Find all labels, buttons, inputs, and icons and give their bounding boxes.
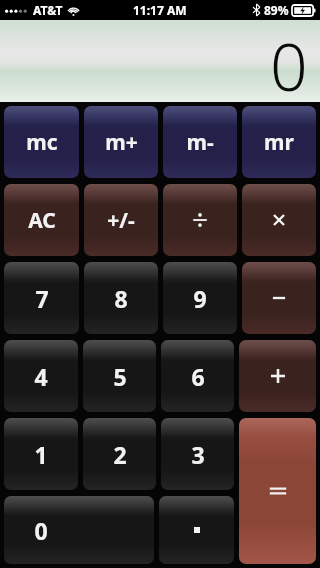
staticText: 0 [270, 20, 308, 100]
button[interactable]: Minus [242, 262, 316, 334]
staticText: 5 [113, 361, 127, 392]
button[interactable]: 6 [161, 340, 234, 412]
button[interactable]: 2 [83, 418, 156, 490]
staticText: 6 [191, 361, 205, 392]
button[interactable]: 9 [163, 262, 237, 334]
button[interactable]: +/- [84, 184, 158, 256]
staticText: 11:17 AM [133, 2, 187, 18]
button[interactable]: Decimal point [159, 496, 234, 564]
staticText: 8 [114, 283, 128, 314]
staticText: AT&T [33, 2, 63, 18]
button[interactable]: Equals [239, 418, 316, 564]
staticText: 7 [35, 283, 49, 314]
button[interactable]: m- [163, 106, 237, 178]
button[interactable]: 8 [84, 262, 158, 334]
staticText: 4 [34, 361, 48, 392]
staticText: mr [264, 128, 294, 157]
button[interactable]: 4 [4, 340, 78, 412]
button[interactable]: mr [242, 106, 316, 178]
staticText: 1 [34, 439, 48, 470]
button[interactable]: mc [4, 106, 79, 178]
staticText: 9 [193, 283, 207, 314]
button[interactable]: Multiply [242, 184, 316, 256]
staticText: 2 [113, 439, 127, 470]
staticText: m+ [105, 128, 138, 157]
button[interactable]: 1 [4, 418, 78, 490]
button[interactable]: Plus [239, 340, 316, 412]
staticText: m- [186, 128, 214, 157]
staticText: 0 [34, 515, 48, 546]
button[interactable]: AC [4, 184, 79, 256]
button[interactable]: 7 [4, 262, 79, 334]
button[interactable]: 0 [4, 496, 154, 564]
button[interactable]: Divide [163, 184, 237, 256]
button[interactable]: 3 [161, 418, 234, 490]
staticText: AC [28, 206, 56, 235]
button[interactable]: m+ [84, 106, 158, 178]
staticText: 3 [191, 439, 205, 470]
button[interactable]: 5 [83, 340, 156, 412]
staticText: mc [26, 128, 58, 157]
staticText: 89% [264, 2, 289, 18]
staticText: +/- [107, 206, 135, 235]
